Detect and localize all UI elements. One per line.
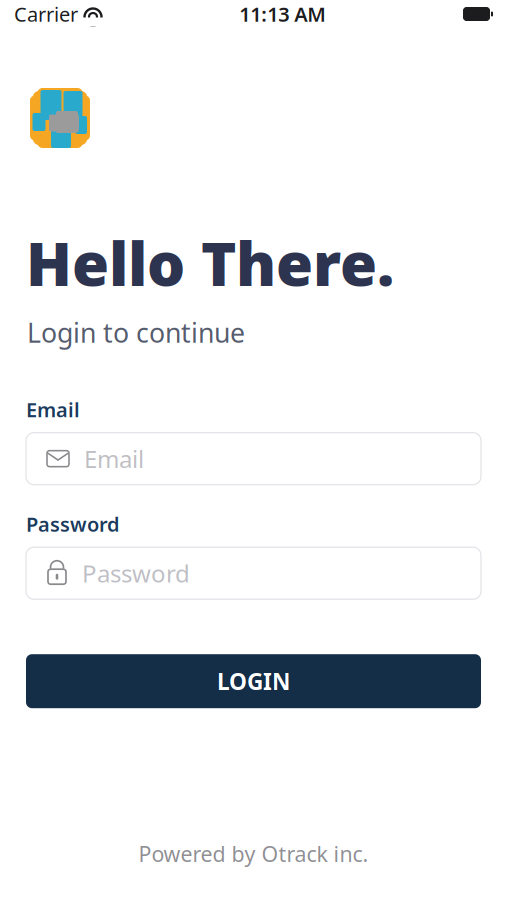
button[interactable]: Email (26, 433, 481, 485)
staticText: 11:13 AM (239, 1, 326, 27)
staticText: LOGIN (217, 666, 290, 696)
staticText: Password (26, 511, 120, 537)
button[interactable]: Password (26, 547, 481, 599)
staticText: Login to continue (27, 315, 245, 350)
staticText: Email (26, 396, 80, 423)
staticText: Hello There. (26, 223, 394, 303)
button[interactable]: LOGIN (26, 654, 481, 708)
staticText: Email (84, 443, 144, 475)
staticText: Carrier (14, 1, 78, 27)
staticText: Powered by Otrack inc. (138, 840, 368, 868)
staticText: Password (82, 557, 190, 589)
